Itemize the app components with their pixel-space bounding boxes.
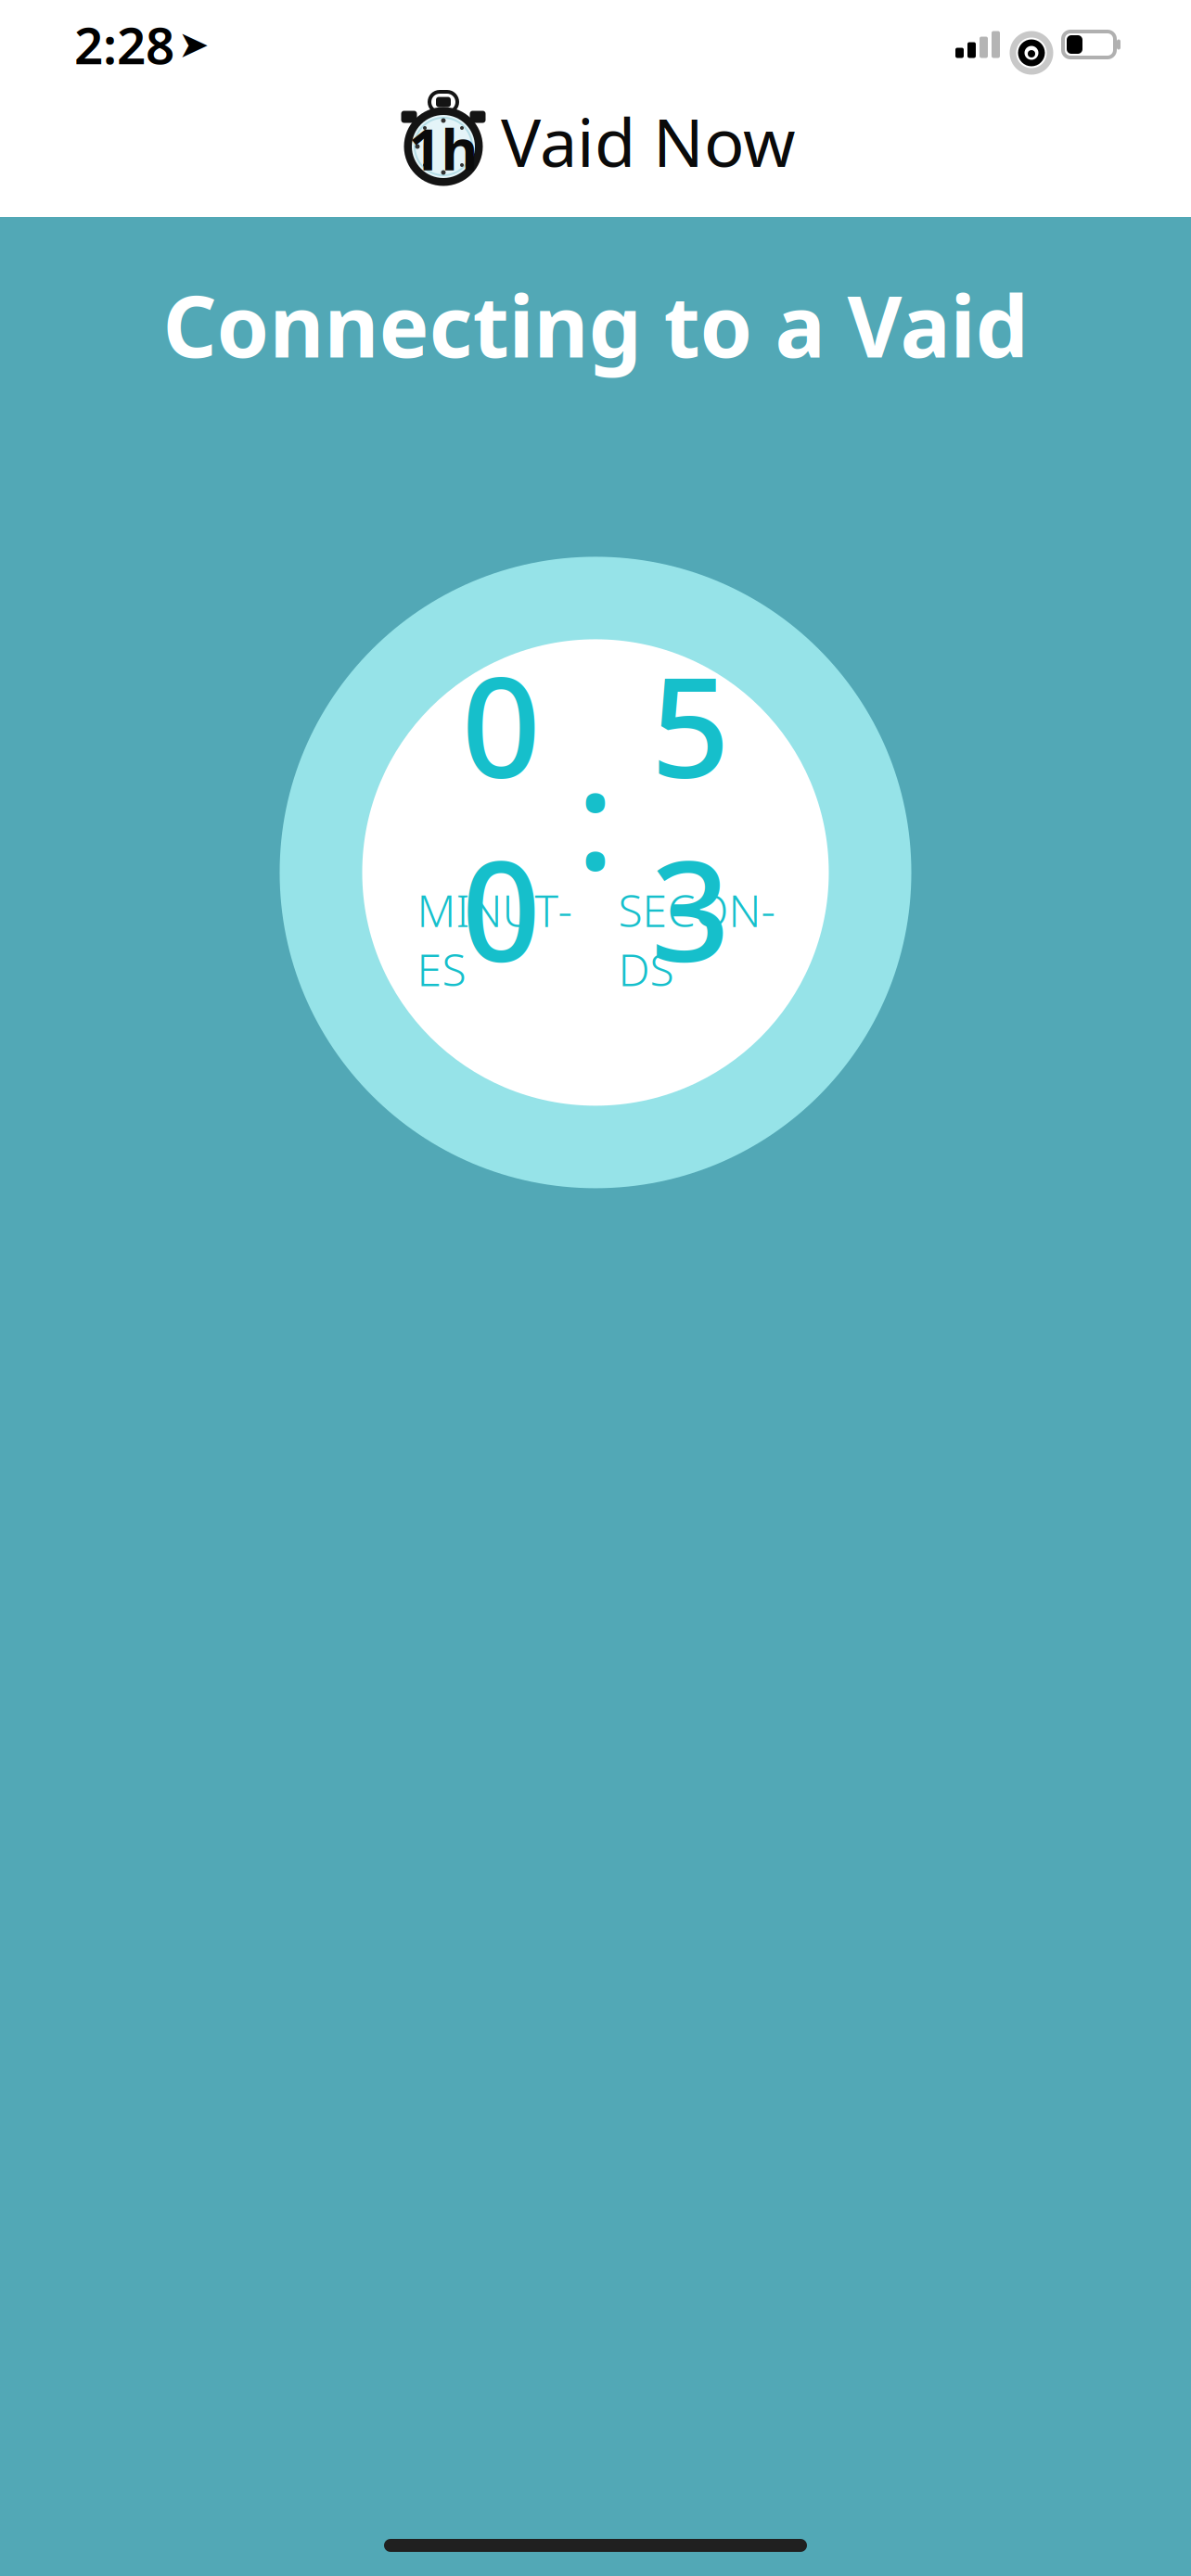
staticText: 2:28 (74, 11, 174, 78)
staticText: : (576, 724, 615, 908)
staticText: ➤ (178, 23, 210, 66)
staticText: MINUTES (417, 880, 572, 998)
staticText: 53 (651, 632, 730, 1000)
staticText: 00 (461, 632, 540, 1000)
staticText: 1h (409, 111, 478, 186)
staticText: Connecting to a Vaid (163, 269, 1028, 381)
staticText: SECONDS (618, 880, 775, 998)
staticText: Vaid Now (501, 97, 796, 185)
